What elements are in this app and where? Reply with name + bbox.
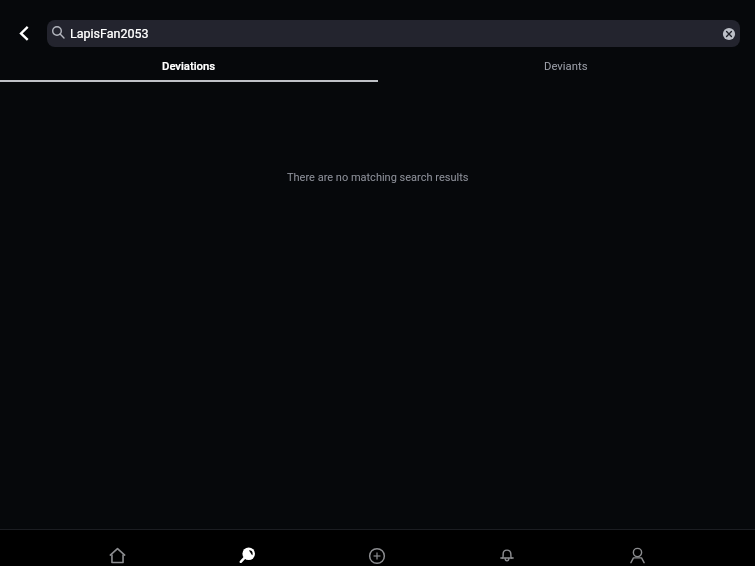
button[interactable]: Clear search: [722, 27, 736, 41]
button[interactable]: LapisFan2053: [47, 20, 740, 47]
button[interactable]: Home: [53, 529, 182, 566]
staticText: Deviants: [544, 60, 588, 73]
staticText: LapisFan2053: [70, 26, 149, 41]
button[interactable]: Deviations: [0, 55, 377, 80]
staticText: Deviations: [162, 60, 216, 73]
staticText: There are no matching search results: [287, 171, 469, 184]
button[interactable]: Create: [312, 529, 442, 566]
button[interactable]: Profile: [572, 529, 702, 566]
button[interactable]: Deviants: [377, 55, 755, 80]
button[interactable]: Notifications: [442, 529, 572, 566]
button[interactable]: Search: [182, 529, 312, 566]
button[interactable]: Back: [11, 19, 39, 47]
